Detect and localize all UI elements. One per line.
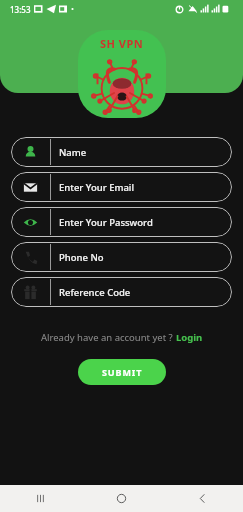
- staticText: Name: [59, 146, 87, 159]
- button[interactable]: Enter Your Password: [11, 207, 232, 237]
- button[interactable]: Reference Code: [11, 277, 232, 307]
- staticText: Phone No: [59, 251, 104, 264]
- button[interactable]: Home: [81, 485, 162, 512]
- button[interactable]: Back: [162, 485, 243, 512]
- staticText: Login: [176, 331, 203, 344]
- staticText: 13:53: [10, 4, 31, 15]
- button[interactable]: Login: [176, 331, 203, 344]
- staticText: SH VPN: [100, 36, 144, 51]
- button[interactable]: SUBMIT: [78, 359, 166, 385]
- button[interactable]: Recent apps: [0, 485, 81, 512]
- staticText: Reference Code: [59, 286, 131, 299]
- staticText: Enter Your Password: [59, 216, 153, 229]
- staticText: Already have an account yet ?: [41, 331, 176, 344]
- staticText: SUBMIT: [102, 366, 143, 378]
- button[interactable]: Name: [11, 137, 232, 167]
- button[interactable]: Phone No: [11, 242, 232, 272]
- button[interactable]: Enter Your Email: [11, 172, 232, 202]
- staticText: Enter Your Email: [59, 181, 135, 194]
